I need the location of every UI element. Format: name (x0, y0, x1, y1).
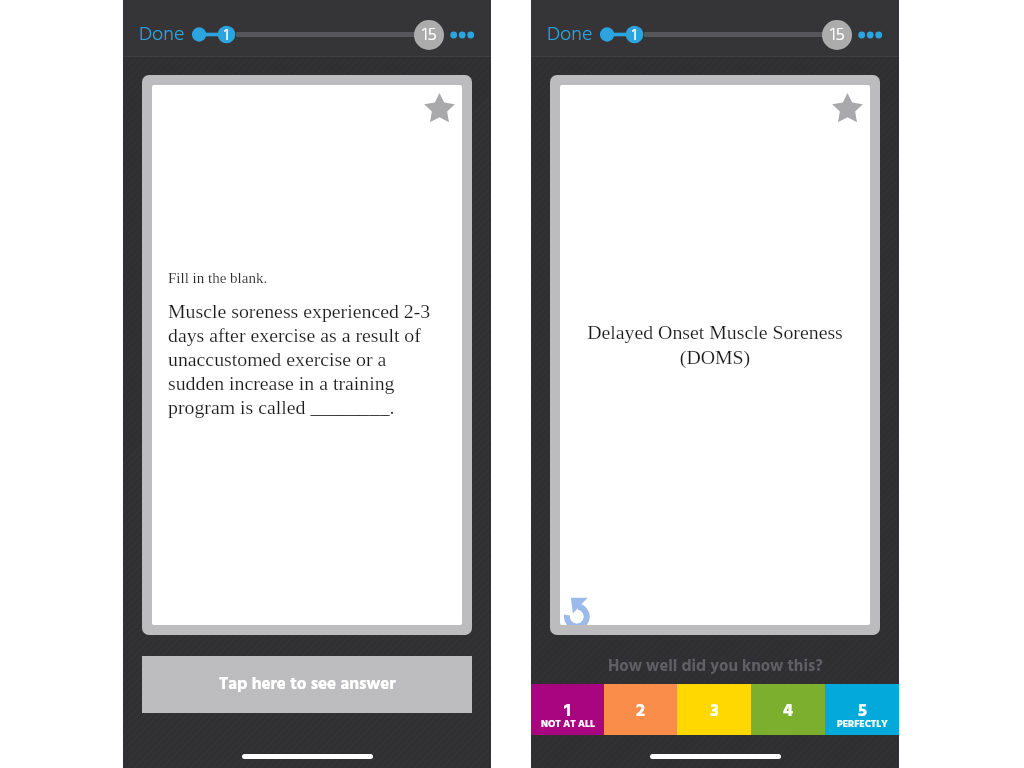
button[interactable]: Star (550, 75, 880, 635)
button[interactable]: 15 (822, 20, 852, 50)
staticText: 1 (564, 697, 571, 721)
staticText: NOT AT ALL (541, 716, 595, 730)
staticText: Tap here to see answer (219, 671, 396, 698)
button[interactable]: Done (139, 19, 185, 50)
staticText: Delayed Onset Muscle Soreness (DOMS) (578, 321, 852, 368)
button[interactable]: More options (855, 20, 885, 50)
staticText: 15 (422, 21, 437, 50)
button[interactable]: Done (547, 19, 593, 50)
staticText: 2 (636, 697, 646, 721)
button[interactable]: 4 (751, 684, 825, 735)
staticText: 5 (858, 697, 867, 721)
staticText: Fill in the blank. (168, 270, 268, 287)
staticText: 3 (710, 697, 719, 721)
staticText: 1 (632, 24, 637, 45)
button[interactable]: 1 (531, 684, 604, 735)
button[interactable]: 2 (604, 684, 677, 735)
button[interactable]: Tap here to see answer (142, 656, 472, 713)
button[interactable]: 15 (414, 20, 444, 50)
button[interactable]: 5 (825, 684, 899, 735)
staticText: 4 (783, 697, 794, 721)
staticText: 15 (830, 21, 845, 50)
staticText: How well did you know this? (608, 654, 823, 680)
button[interactable]: Star (424, 93, 455, 124)
button[interactable]: More options (447, 20, 477, 50)
staticText: 1 (224, 24, 229, 45)
button[interactable]: Star (142, 75, 472, 635)
button[interactable]: 3 (677, 684, 751, 735)
button[interactable]: Star (832, 93, 863, 124)
staticText: Done (139, 19, 185, 50)
staticText: PERFECTLY (837, 716, 888, 730)
button[interactable]: Undo (560, 596, 590, 625)
staticText: Muscle soreness experienced 2-3 days aft… (168, 300, 438, 418)
staticText: Done (547, 19, 593, 50)
